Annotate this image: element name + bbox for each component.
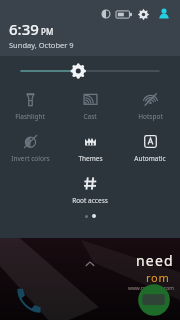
staticText: Invert colors — [11, 154, 50, 163]
staticText: Hotspot — [138, 112, 163, 121]
button[interactable]: Do not disturb — [100, 8, 112, 20]
button[interactable]: Settings — [137, 8, 150, 21]
button[interactable]: Cast — [60, 89, 120, 123]
staticText: Automatic — [134, 154, 166, 163]
button[interactable]: Messages — [136, 282, 172, 318]
staticText: Cast — [83, 112, 97, 121]
staticText: Root access — [72, 196, 108, 205]
staticText: www.needrom.com — [128, 285, 174, 292]
staticText: rom — [146, 270, 170, 285]
staticText: Sunday, October 9 — [9, 40, 74, 50]
button[interactable]: Phone — [10, 282, 44, 316]
staticText: 6:39 — [9, 19, 39, 39]
button[interactable]: Invert colors — [0, 131, 60, 165]
button[interactable]: Themes — [60, 131, 120, 165]
button[interactable]: Brightness — [21, 56, 159, 86]
button[interactable]: User — [157, 7, 171, 21]
staticText: PM — [41, 26, 54, 37]
button[interactable]: Flashlight — [0, 89, 60, 123]
staticText: need — [136, 251, 174, 270]
button[interactable]: Open app drawer — [82, 256, 98, 272]
staticText: Flashlight — [15, 112, 45, 121]
button[interactable]: Automatic — [120, 131, 180, 165]
button[interactable]: Hotspot — [120, 89, 180, 123]
staticText: Themes — [78, 154, 103, 163]
button[interactable]: Root access — [60, 173, 120, 207]
